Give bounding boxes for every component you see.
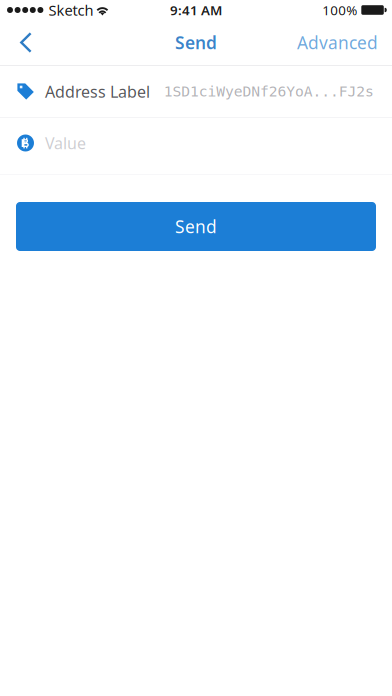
staticText: Send — [175, 215, 217, 238]
staticText: Value — [45, 132, 86, 154]
staticText: Address Label — [45, 81, 150, 102]
button[interactable]: Address Label — [0, 66, 392, 117]
staticText: Advanced — [297, 31, 378, 54]
staticText: Send — [175, 31, 217, 54]
staticText: Sketch — [48, 0, 93, 20]
staticText: 9:41 AM — [170, 1, 222, 19]
button[interactable]: Back — [0, 20, 48, 64]
button[interactable]: Send — [16, 202, 376, 251]
button[interactable]: Value — [0, 118, 392, 174]
staticText: 100% — [322, 1, 357, 19]
staticText: 1SD1ciWyeDNf26YoA...FJ2s — [164, 83, 374, 100]
button[interactable]: Advanced — [281, 20, 392, 64]
